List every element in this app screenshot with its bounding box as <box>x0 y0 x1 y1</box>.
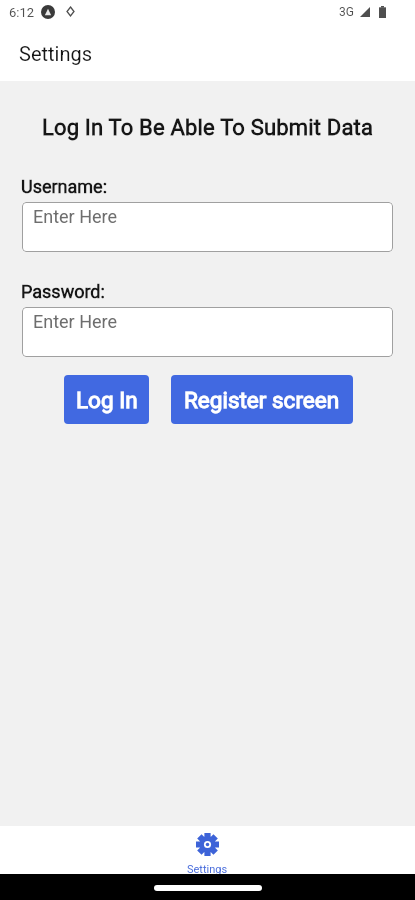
staticText: Settings <box>187 863 228 874</box>
button[interactable]: Enter Here <box>22 202 393 252</box>
staticText: Enter Here <box>33 311 118 332</box>
staticText: Log In <box>76 387 138 413</box>
button[interactable]: Enter Here <box>22 307 393 357</box>
staticText: Log In To Be Able To Submit Data <box>0 115 415 141</box>
staticText: Password: <box>21 281 105 302</box>
staticText: 3G <box>339 5 354 19</box>
other: Settings <box>196 833 219 856</box>
staticText: 6:12 <box>9 5 35 20</box>
staticText: Register screen <box>184 387 340 413</box>
staticText: Username: <box>21 176 108 197</box>
button[interactable]: Log In <box>64 375 149 424</box>
staticText: Settings <box>19 42 93 65</box>
staticText: Enter Here <box>33 206 118 227</box>
button[interactable]: Settings <box>157 826 258 874</box>
button[interactable]: Register screen <box>171 375 353 424</box>
